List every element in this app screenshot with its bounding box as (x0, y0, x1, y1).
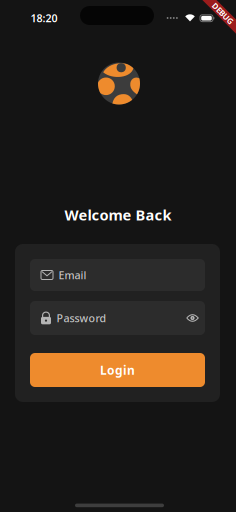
button[interactable]: Show password (184, 308, 200, 328)
staticText: Login (100, 362, 135, 378)
staticText: 18:20 (30, 11, 57, 25)
staticText: Email (58, 268, 86, 282)
button[interactable]: Login (30, 353, 205, 387)
staticText: DEBUG (209, 8, 236, 19)
staticText: Password (56, 311, 106, 325)
staticText: Welcome Back (64, 205, 171, 224)
